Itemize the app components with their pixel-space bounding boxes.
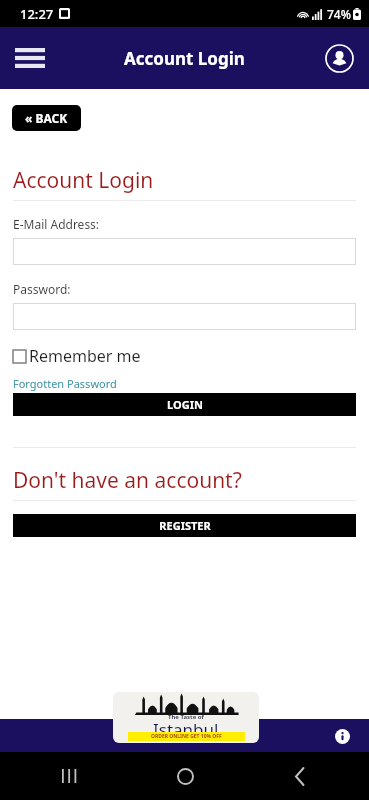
staticText: « BACK — [25, 110, 68, 126]
button[interactable]: The Taste of Istanbul — [113, 692, 259, 743]
button[interactable]: Account — [317, 36, 361, 80]
staticText: Don't have an account? — [13, 466, 242, 495]
button[interactable]: LOGIN — [13, 393, 356, 416]
staticText: ORDER ONLINE GET 10% OFF — [151, 733, 222, 740]
button[interactable]: Back — [283, 759, 317, 793]
staticText: 74% — [327, 6, 351, 22]
staticText: Account Login — [13, 166, 154, 195]
staticText: Account Login — [124, 47, 245, 70]
staticText: E-Mail Address: — [13, 216, 100, 232]
button[interactable]: « BACK — [12, 105, 81, 131]
button[interactable]: Remember me — [13, 345, 141, 367]
staticText: Remember me — [29, 345, 141, 367]
button[interactable]: Recents — [52, 759, 86, 793]
staticText: Istanbul — [153, 718, 219, 741]
staticText: Forgotten Password — [13, 376, 117, 391]
staticText: Password: — [13, 281, 71, 297]
button[interactable]: Home — [168, 759, 202, 793]
button[interactable]: Text field — [13, 303, 356, 330]
button[interactable]: Forgotten Password — [13, 376, 117, 391]
staticText: REGISTER — [159, 518, 211, 533]
button[interactable]: Information — [329, 723, 355, 749]
button[interactable]: Text field — [13, 238, 356, 265]
staticText: The Taste of — [168, 713, 204, 721]
button[interactable]: Menu — [8, 36, 52, 80]
staticText: LOGIN — [167, 397, 203, 412]
button[interactable]: REGISTER — [13, 514, 356, 537]
staticText: 12:27 — [20, 5, 54, 23]
